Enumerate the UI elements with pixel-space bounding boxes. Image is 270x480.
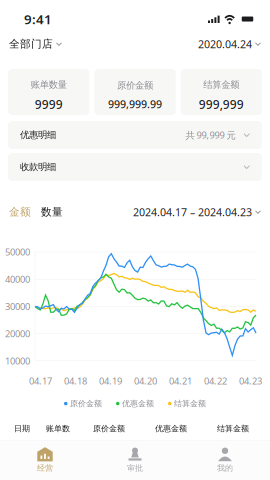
button[interactable]: 我的 — [180, 441, 270, 480]
staticText: 结算金额 — [217, 424, 249, 433]
button[interactable]: 审批 — [90, 441, 180, 480]
staticText: 数量 — [41, 205, 63, 218]
staticText: 金额 — [9, 205, 31, 218]
staticText: 04.20 — [134, 375, 157, 387]
staticText: 账单数量 — [31, 79, 67, 90]
staticText: 9:41 — [24, 10, 52, 28]
staticText: 优惠金额 — [122, 399, 154, 408]
button[interactable]: 收款明细 — [8, 153, 262, 181]
button[interactable]: 结算金额 — [181, 69, 262, 115]
staticText: 04.22 — [204, 375, 227, 387]
staticText: 结算金额 — [174, 399, 206, 408]
staticText: 999,999 — [199, 96, 244, 112]
button[interactable]: 原价金额 — [94, 69, 176, 115]
staticText: 50000 — [5, 246, 30, 258]
staticText: 共 99,999 元 — [185, 129, 235, 141]
staticText: 原价金额 — [70, 399, 102, 408]
staticText: 收款明细 — [20, 161, 56, 173]
staticText: 40000 — [5, 273, 30, 285]
button[interactable]: 经营 — [0, 441, 90, 480]
staticText: 全部门店 — [9, 37, 53, 50]
staticText: 我的 — [217, 463, 233, 473]
button[interactable]: 2020.04.24 — [198, 32, 261, 56]
staticText: 20000 — [5, 327, 30, 340]
button[interactable]: 全部门店 — [9, 32, 62, 55]
staticText: 优惠明细 — [20, 129, 56, 141]
staticText: 04.19 — [99, 375, 122, 387]
staticText: 2020.04.24 — [198, 37, 252, 51]
staticText: 原价金额 — [93, 424, 125, 433]
staticText: 账单数 — [46, 424, 70, 433]
staticText: 原价金额 — [117, 80, 153, 91]
staticText: 10000 — [5, 355, 30, 367]
staticText: 999,999.99 — [108, 97, 162, 111]
button[interactable]: 账单数量 — [8, 69, 89, 115]
staticText: 9999 — [35, 96, 63, 112]
staticText: 审批 — [127, 463, 143, 473]
staticText: 04.18 — [64, 375, 87, 387]
staticText: 优惠金额 — [155, 424, 187, 433]
button[interactable]: 金额 — [9, 201, 31, 222]
staticText: 结算金额 — [203, 79, 239, 90]
button[interactable]: 数量 — [41, 201, 63, 222]
staticText: 30000 — [5, 300, 30, 313]
button[interactable]: 优惠明细 — [8, 121, 262, 149]
staticText: 04.17 — [29, 375, 52, 387]
staticText: 日期 — [14, 424, 30, 433]
button[interactable]: 2024.04.17 – 2024.04.23 — [133, 201, 261, 223]
staticText: 2024.04.17 – 2024.04.23 — [133, 205, 252, 219]
staticText: 经营 — [37, 463, 53, 473]
staticText: 04.21 — [169, 375, 192, 387]
staticText: 04.23 — [239, 375, 262, 387]
